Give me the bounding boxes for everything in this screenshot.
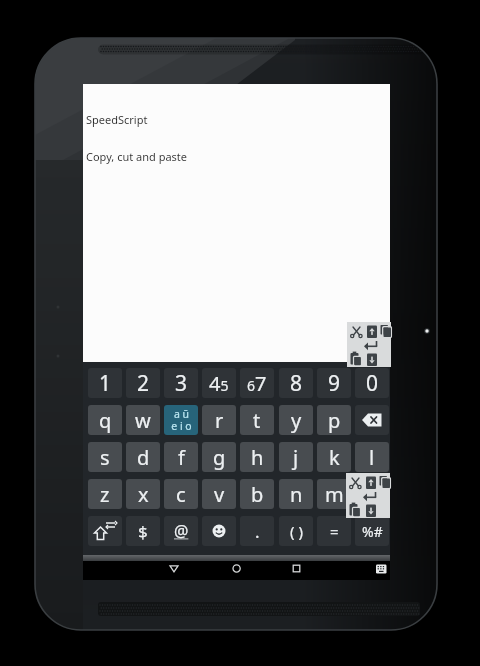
- staticText: h: [251, 444, 264, 471]
- staticText: f: [178, 444, 185, 471]
- button[interactable]: b: [240, 479, 274, 509]
- staticText: 1: [99, 369, 112, 398]
- staticText: x: [138, 481, 149, 508]
- button[interactable]: m: [317, 479, 351, 509]
- button[interactable]: x: [126, 479, 160, 509]
- staticText: 3: [175, 369, 188, 398]
- button[interactable]: 8: [279, 368, 313, 398]
- button[interactable]: [371, 561, 390, 577]
- staticText: SpeedScript: [86, 112, 148, 127]
- staticText: Copy, cut and paste: [86, 149, 188, 164]
- staticText: 2: [137, 369, 150, 398]
- button[interactable]: g: [202, 442, 236, 472]
- button[interactable]: 45: [202, 368, 236, 398]
- staticText: w: [135, 407, 151, 434]
- button[interactable]: [355, 479, 389, 509]
- button[interactable]: d: [126, 442, 160, 472]
- staticText: s: [100, 444, 110, 471]
- staticText: v: [214, 481, 225, 508]
- staticText: z: [100, 481, 110, 508]
- button[interactable]: j: [279, 442, 313, 472]
- button[interactable]: [202, 516, 236, 546]
- button[interactable]: .: [240, 516, 274, 546]
- staticText: =: [330, 521, 339, 541]
- staticText: y: [291, 407, 302, 434]
- staticText: a ū e i o: [171, 407, 192, 433]
- staticText: 67: [247, 370, 267, 397]
- staticText: t: [253, 407, 261, 434]
- staticText: 9: [328, 369, 341, 398]
- staticText: p: [328, 407, 341, 434]
- button[interactable]: c: [164, 479, 198, 509]
- staticText: q: [99, 407, 112, 434]
- button[interactable]: 1: [88, 368, 122, 398]
- button[interactable]: z: [88, 479, 122, 509]
- button[interactable]: f: [164, 442, 198, 472]
- button[interactable]: [285, 561, 307, 580]
- button[interactable]: 0: [355, 368, 389, 398]
- staticText: 0: [366, 369, 379, 398]
- staticText: b: [251, 481, 264, 508]
- button[interactable]: @: [164, 516, 198, 546]
- staticText: n: [290, 481, 303, 508]
- button[interactable]: l: [355, 442, 389, 472]
- staticText: %#: [362, 522, 383, 541]
- staticText: l: [369, 444, 375, 471]
- button[interactable]: r: [202, 405, 236, 435]
- staticText: d: [137, 444, 150, 471]
- button[interactable]: 3: [164, 368, 198, 398]
- button[interactable]: t: [240, 405, 274, 435]
- button[interactable]: w: [126, 405, 160, 435]
- button[interactable]: n: [279, 479, 313, 509]
- staticText: m: [325, 481, 344, 508]
- staticText: 45: [209, 370, 229, 397]
- staticText: ( ): [290, 521, 303, 541]
- staticText: c: [176, 481, 186, 508]
- button[interactable]: 67: [240, 368, 274, 398]
- button[interactable]: [88, 516, 122, 546]
- button[interactable]: q: [88, 405, 122, 435]
- button[interactable]: $: [126, 516, 160, 546]
- button[interactable]: [225, 561, 247, 580]
- button[interactable]: k: [317, 442, 351, 472]
- staticText: $: [138, 520, 148, 543]
- staticText: @: [174, 520, 189, 542]
- staticText: g: [213, 444, 226, 471]
- button[interactable]: h: [240, 442, 274, 472]
- button[interactable]: s: [88, 442, 122, 472]
- button[interactable]: [355, 405, 389, 435]
- button[interactable]: p: [317, 405, 351, 435]
- staticText: .: [255, 520, 260, 543]
- button[interactable]: [346, 473, 390, 518]
- button[interactable]: 2: [126, 368, 160, 398]
- button[interactable]: [347, 322, 391, 367]
- staticText: r: [215, 407, 224, 434]
- button[interactable]: a ū e i o: [164, 405, 198, 435]
- button[interactable]: [163, 561, 185, 580]
- staticText: 8: [290, 369, 303, 398]
- button[interactable]: y: [279, 405, 313, 435]
- button[interactable]: %#: [355, 516, 389, 546]
- button[interactable]: v: [202, 479, 236, 509]
- staticText: j: [293, 444, 299, 471]
- button[interactable]: ( ): [279, 516, 313, 546]
- staticText: k: [329, 444, 340, 471]
- button[interactable]: =: [317, 516, 351, 546]
- button[interactable]: 9: [317, 368, 351, 398]
